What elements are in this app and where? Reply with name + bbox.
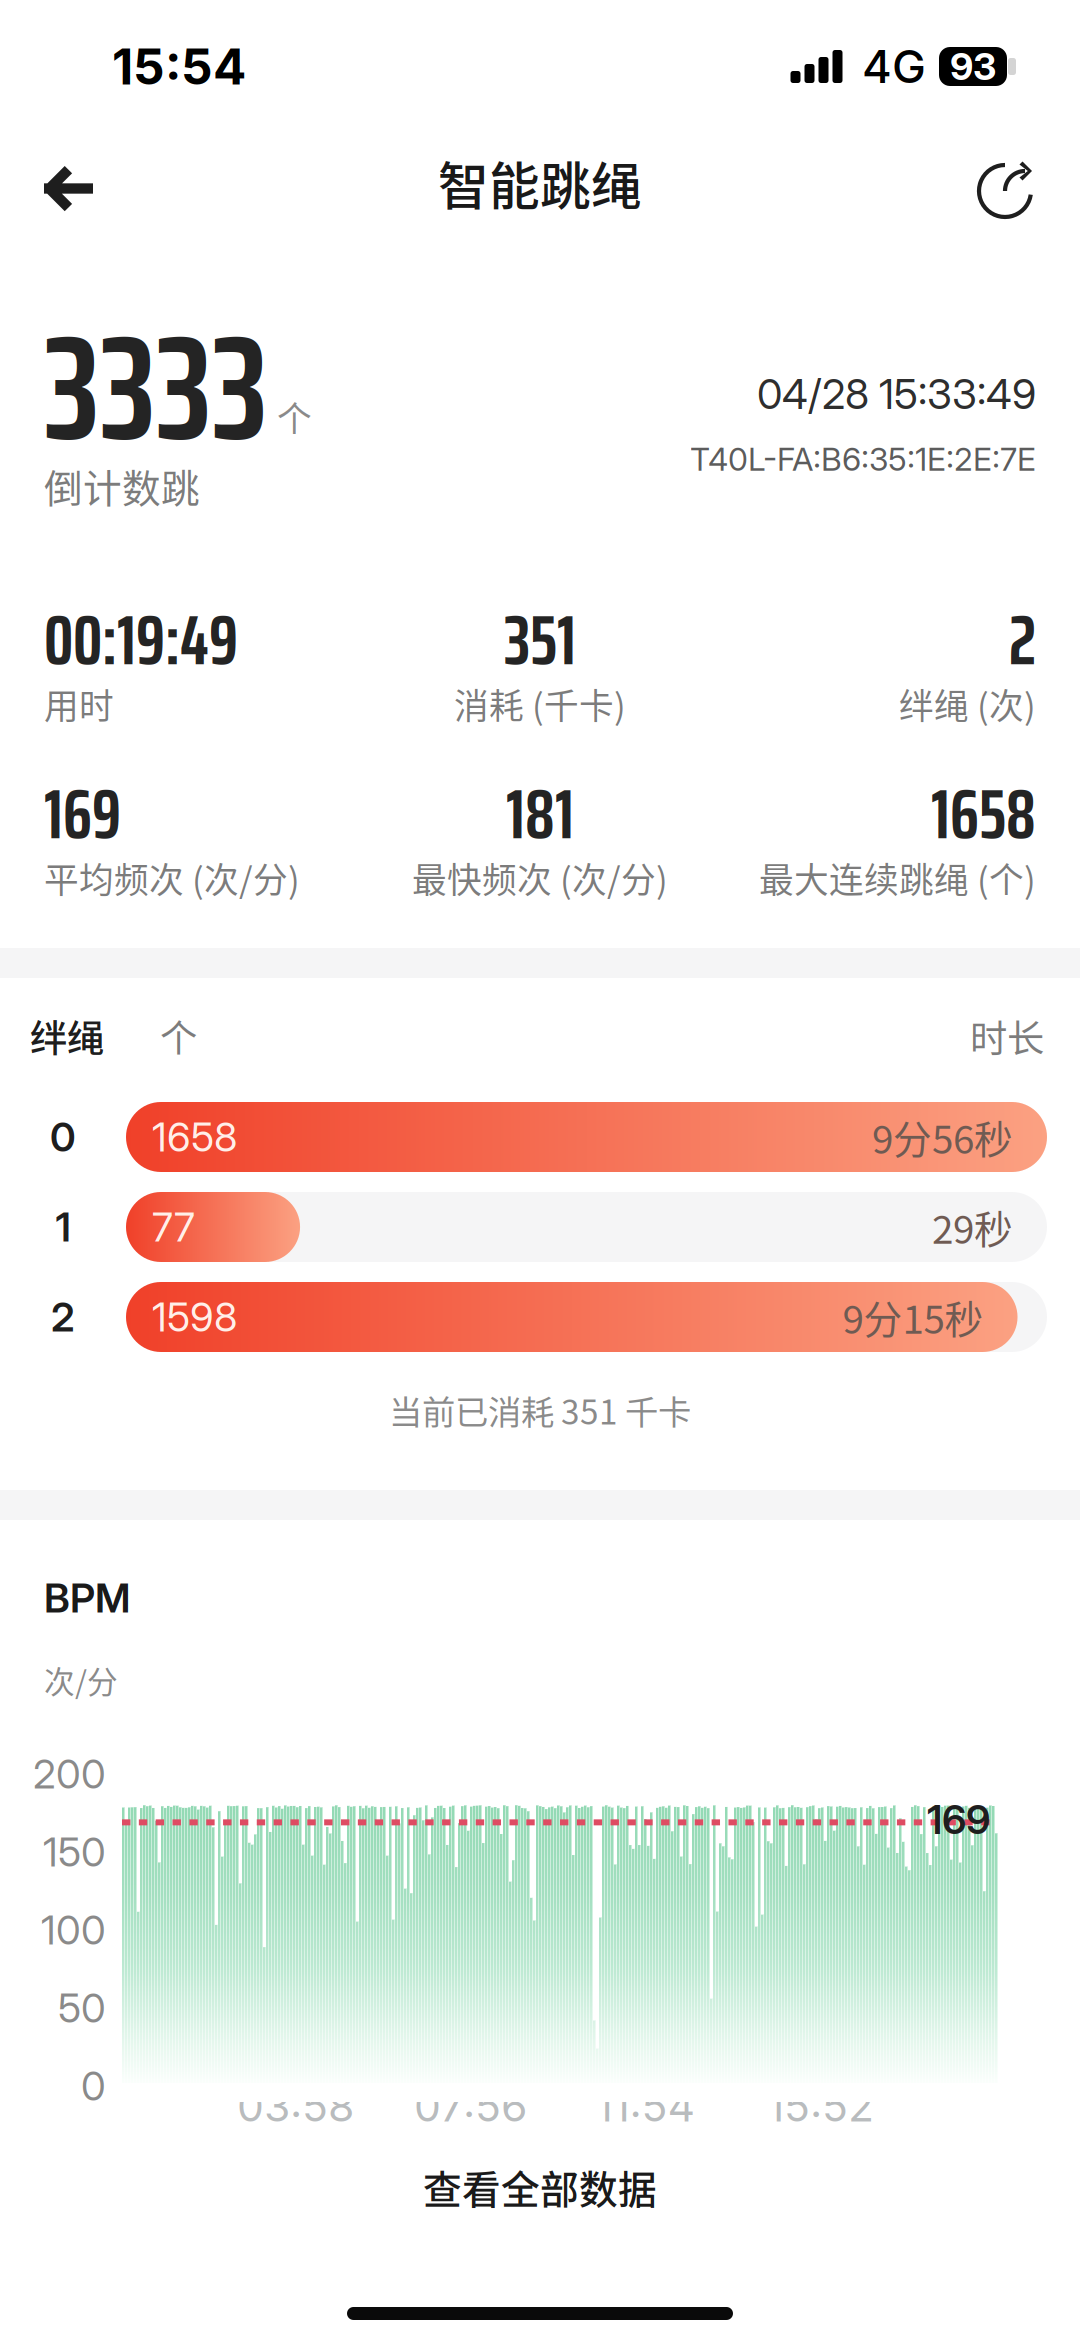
staticText: 3333: [44, 273, 268, 503]
staticText: 消耗 (千卡): [454, 679, 626, 729]
staticText: 2: [1009, 585, 1036, 694]
staticText: 最快频次 (次/分): [412, 853, 668, 903]
staticText: 15:52: [767, 2080, 874, 2132]
staticText: 07:56: [414, 2080, 527, 2132]
staticText: 时长: [970, 1009, 1044, 1063]
staticText: 4G: [862, 39, 926, 94]
staticText: 100: [41, 1906, 106, 1954]
button[interactable]: 查看全部数据: [0, 2137, 1080, 2237]
staticText: BPM: [44, 1574, 130, 1622]
staticText: 绊绳 (次): [899, 679, 1036, 729]
staticText: 50: [58, 1984, 106, 2032]
staticText: 03:58: [237, 2080, 354, 2132]
staticText: 0: [81, 2062, 106, 2110]
staticText: 15:54: [112, 37, 246, 96]
staticText: 次/分: [44, 1658, 118, 1702]
staticText: 9分56秒: [872, 1109, 1013, 1165]
staticText: 1: [55, 1203, 70, 1251]
staticText: 1598: [152, 1293, 237, 1341]
staticText: 1658: [152, 1113, 237, 1161]
staticText: 9分15秒: [842, 1289, 983, 1345]
staticText: 04/28 15:33:49: [757, 369, 1036, 419]
staticText: 77: [152, 1203, 195, 1251]
staticText: 200: [33, 1750, 106, 1798]
staticText: 00:19:49: [44, 585, 238, 694]
staticText: 11:54: [595, 2080, 695, 2132]
staticText: 个: [160, 1009, 197, 1063]
button[interactable]: Refresh: [937, 126, 1080, 240]
staticText: 倒计数跳: [44, 458, 200, 514]
staticText: 351: [504, 585, 576, 694]
button[interactable]: Back: [0, 127, 133, 238]
staticText: 查看全部数据: [423, 2159, 657, 2215]
staticText: 169: [44, 759, 121, 868]
staticText: T40L-FA:B6:35:1E:2E:7E: [690, 440, 1036, 478]
staticText: 绊绳: [30, 1009, 104, 1063]
staticText: 平均频次 (次/分): [44, 853, 300, 903]
staticText: 用时: [44, 679, 114, 729]
staticText: 2: [51, 1293, 75, 1341]
staticText: 当前已消耗 351 千卡: [389, 1386, 691, 1434]
staticText: 最大连续跳绳 (个): [759, 853, 1036, 903]
staticText: 0: [50, 1113, 76, 1161]
staticText: 93: [950, 44, 996, 89]
staticText: 个: [277, 392, 312, 442]
staticText: 29秒: [932, 1199, 1013, 1255]
staticText: 181: [506, 759, 574, 868]
staticText: 1658: [931, 759, 1036, 868]
staticText: 169: [927, 1795, 990, 1844]
staticText: 智能跳绳: [438, 146, 642, 220]
staticText: 150: [43, 1828, 106, 1876]
